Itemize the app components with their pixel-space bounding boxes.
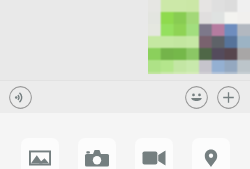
button[interactable]: Location xyxy=(192,138,230,169)
button[interactable]: Voice message xyxy=(9,86,32,109)
button[interactable]: Camera xyxy=(78,138,116,169)
button[interactable]: Video xyxy=(135,138,173,169)
button[interactable]: Gallery xyxy=(21,138,59,169)
button[interactable]: Add attachment xyxy=(217,86,240,109)
button[interactable]: Emoji xyxy=(185,86,208,109)
